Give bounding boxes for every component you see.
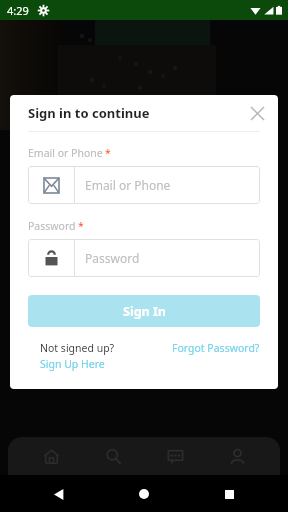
staticText: Password xyxy=(28,219,76,233)
staticText: Forgot Password? xyxy=(172,341,260,355)
button[interactable]: Password xyxy=(28,239,260,277)
button[interactable]: Sign Up Here xyxy=(40,357,105,371)
button[interactable]: Sign In xyxy=(28,295,260,327)
button[interactable]: Email or Phone xyxy=(28,166,260,204)
button[interactable]: Home xyxy=(32,437,70,475)
button[interactable]: Recents xyxy=(218,483,240,505)
staticText: * xyxy=(78,219,84,233)
staticText: * xyxy=(105,146,111,160)
staticText: Password xyxy=(85,250,140,266)
button[interactable]: Back xyxy=(48,483,70,505)
button[interactable]: Forgot Password? xyxy=(172,341,260,355)
staticText: 4:29 xyxy=(7,3,29,18)
staticText: Sign in to continue xyxy=(28,104,150,122)
staticText: Email or Phone xyxy=(28,146,103,160)
button[interactable]: Profile xyxy=(218,437,256,475)
staticText: Not signed up? xyxy=(40,341,115,355)
staticText: Email or Phone xyxy=(85,177,171,193)
button[interactable]: Home xyxy=(133,483,155,505)
staticText: Sign Up Here xyxy=(40,357,105,371)
button[interactable]: Close xyxy=(244,100,270,126)
button[interactable]: Search xyxy=(94,437,132,475)
button[interactable]: Messages xyxy=(156,437,194,475)
staticText: Sign In xyxy=(123,303,166,320)
